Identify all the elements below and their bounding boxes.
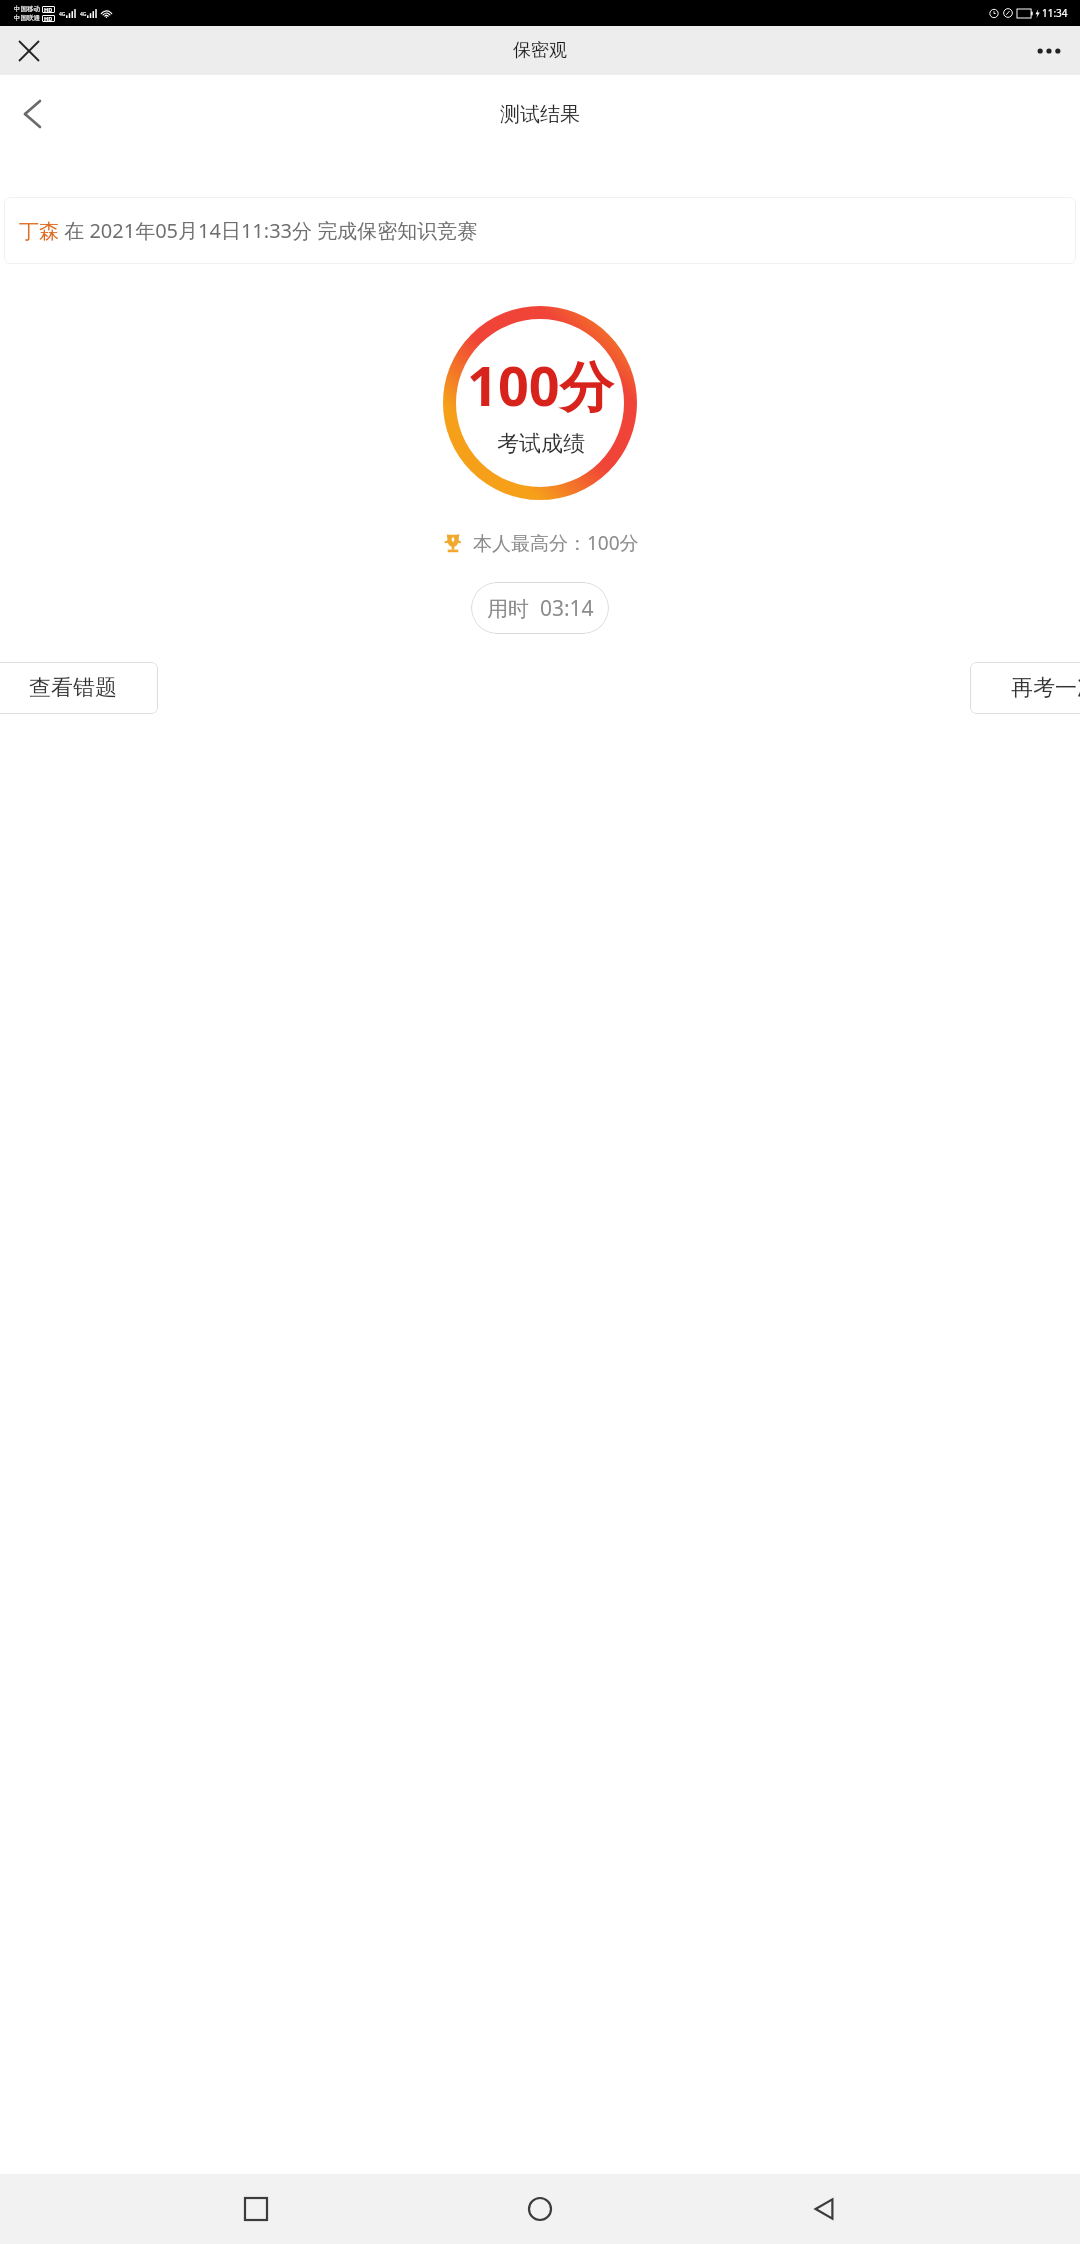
staticText: 100分: [467, 348, 614, 422]
button[interactable]: 关闭: [6, 28, 52, 74]
staticText: 再考一次: [1011, 674, 1080, 702]
staticText: 中国移动: [14, 5, 40, 13]
button[interactable]: 最近任务: [228, 2181, 284, 2237]
staticText: 查看错题: [29, 674, 117, 702]
staticText: 中国联通: [14, 14, 40, 22]
button[interactable]: 主页: [512, 2181, 568, 2237]
staticText: 测试结果: [500, 102, 580, 127]
staticText: 考试成绩: [497, 430, 585, 458]
button[interactable]: 丁森 在 2021年05月14日11:33分 完成保密知识竞赛: [19, 217, 1061, 244]
staticText: 本人最高分：100分: [473, 530, 639, 556]
button[interactable]: 再考一次: [970, 662, 1080, 714]
staticText: 用时 03:14: [487, 594, 594, 623]
button[interactable]: 更多: [1026, 28, 1072, 74]
staticText: 4G: [80, 11, 87, 18]
button[interactable]: 返回: [8, 90, 56, 138]
staticText: 4G: [59, 11, 66, 18]
button[interactable]: 返回: [796, 2181, 852, 2237]
staticText: HD: [44, 15, 53, 22]
button[interactable]: 用时 03:14: [471, 582, 609, 634]
button[interactable]: 查看错题: [0, 662, 158, 714]
staticText: 丁森 在 2021年05月14日11:33分 完成保密知识竞赛: [19, 217, 478, 244]
staticText: 保密观: [513, 39, 567, 62]
staticText: HD: [44, 6, 53, 13]
staticText: 11:34: [1042, 6, 1068, 20]
